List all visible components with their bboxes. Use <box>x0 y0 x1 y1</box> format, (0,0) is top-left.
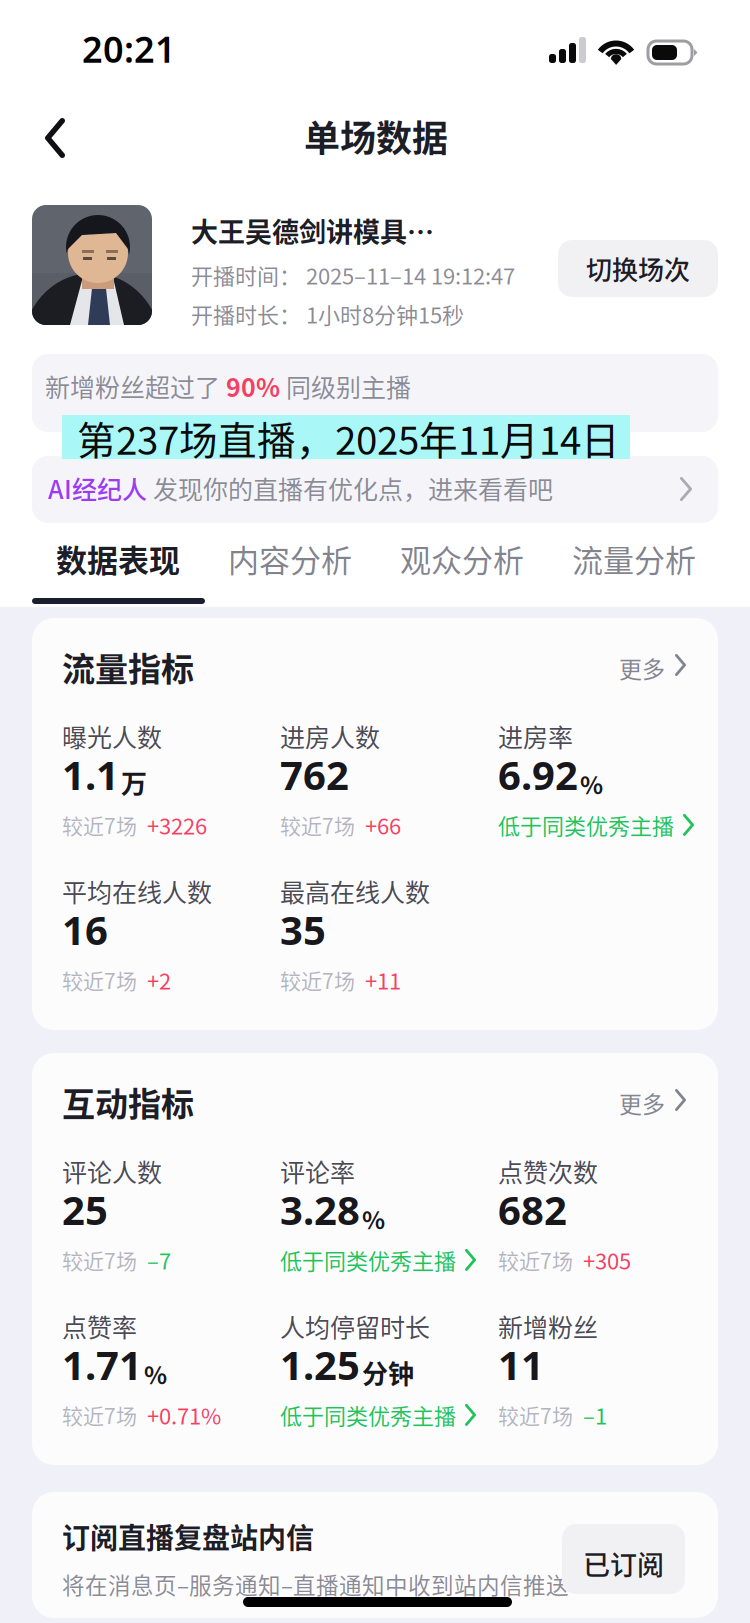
staticText: 内容分析 <box>228 536 352 581</box>
button[interactable]: 返回 <box>14 95 94 181</box>
staticText: 流量分析 <box>572 536 696 581</box>
staticText: 曝光人数 <box>62 718 162 754</box>
button[interactable]: 低于同类优秀主播 <box>498 809 694 841</box>
staticText: 20:21 <box>82 25 176 73</box>
button[interactable]: 切换场次 <box>558 240 718 297</box>
staticText: 发现你的直播有优化点，进来看看吧 <box>147 470 553 506</box>
staticText: 人均停留时长 <box>280 1308 430 1344</box>
staticText: 较近7场 <box>498 1245 573 1275</box>
button[interactable]: AI经纪人 <box>32 456 718 523</box>
staticText: 评论率 <box>280 1153 355 1189</box>
staticText: 较近7场 <box>498 1400 573 1430</box>
staticText: 低于同类优秀主播 <box>498 809 674 841</box>
button[interactable]: 更多 <box>619 1078 707 1120</box>
staticText: 切换场次 <box>586 250 690 287</box>
button[interactable]: 数据表现 <box>54 526 178 600</box>
staticText: 新增粉丝超过了 <box>45 368 226 404</box>
staticText: +11 <box>365 964 401 996</box>
staticText: 762 <box>280 748 349 801</box>
staticText: 进房率 <box>498 718 573 754</box>
staticText: 新增粉丝 <box>498 1308 598 1344</box>
staticText: % <box>362 1201 385 1236</box>
staticText: +0.71% <box>147 1399 221 1431</box>
staticText: 分钟 <box>362 1353 414 1391</box>
staticText: 35 <box>280 903 326 956</box>
staticText: 较近7场 <box>62 810 137 840</box>
staticText: 订阅直播复盘站内信 <box>62 1516 314 1556</box>
staticText: 数据表现 <box>56 536 180 581</box>
staticText: 1.71 <box>62 1338 142 1391</box>
staticText: +66 <box>365 809 401 841</box>
staticText: 1.25 <box>280 1338 360 1391</box>
staticText: 流量指标 <box>62 643 194 691</box>
staticText: 11 <box>498 1338 544 1391</box>
staticText: 点赞率 <box>62 1308 137 1344</box>
staticText: –7 <box>147 1244 171 1276</box>
button[interactable]: 低于同类优秀主播 <box>280 1399 476 1431</box>
staticText: 点赞次数 <box>498 1153 598 1189</box>
button[interactable]: 观众分析 <box>398 526 522 600</box>
staticText: 平均在线人数 <box>62 873 212 909</box>
staticText: 90% <box>226 368 280 404</box>
staticText: 开播时长： 1小时8分钟15秒 <box>191 298 464 330</box>
staticText: 观众分析 <box>400 536 524 581</box>
staticText: % <box>144 1356 167 1391</box>
staticText: % <box>580 766 603 801</box>
staticText: 682 <box>498 1183 567 1236</box>
staticText: 进房人数 <box>280 718 380 754</box>
staticText: 单场数据 <box>304 110 448 162</box>
button[interactable]: 内容分析 <box>226 526 350 600</box>
staticText: 6.92 <box>498 748 578 801</box>
staticText: +3226 <box>147 809 207 841</box>
staticText: 同级别主播 <box>280 368 411 404</box>
staticText: 低于同类优秀主播 <box>280 1244 456 1276</box>
staticText: 较近7场 <box>280 810 355 840</box>
staticText: 3.28 <box>280 1183 360 1236</box>
staticText: 最高在线人数 <box>280 873 430 909</box>
staticText: 互动指标 <box>62 1078 194 1126</box>
staticText: 25 <box>62 1183 108 1236</box>
button[interactable]: 更多 <box>619 643 707 685</box>
button[interactable]: 流量分析 <box>570 526 694 600</box>
staticText: 更多 <box>619 1086 665 1119</box>
staticText: 较近7场 <box>62 1400 137 1430</box>
staticText: 评论人数 <box>62 1153 162 1189</box>
button[interactable]: 已订阅 <box>562 1524 685 1594</box>
staticText: 开播时间： 2025–11–14 19:12:47 <box>191 259 515 291</box>
staticText: 低于同类优秀主播 <box>280 1399 456 1431</box>
staticText: 较近7场 <box>62 1245 137 1275</box>
staticText: 大王吴德剑讲模具… <box>191 211 434 250</box>
staticText: 万 <box>121 763 147 801</box>
staticText: 较近7场 <box>280 965 355 995</box>
staticText: 16 <box>62 903 108 956</box>
staticText: 将在消息页–服务通知–直播通知中收到站内信推送 <box>62 1568 569 1601</box>
staticText: 更多 <box>619 651 665 684</box>
staticText: 1.1 <box>62 748 119 801</box>
staticText: +305 <box>583 1244 631 1276</box>
staticText: +2 <box>147 964 171 996</box>
staticText: AI经纪人 <box>48 470 147 506</box>
staticText: 已订阅 <box>583 1544 664 1583</box>
staticText: 第237场直播，2025年11月14日 <box>77 410 620 466</box>
staticText: 较近7场 <box>62 965 137 995</box>
staticText: –1 <box>583 1399 607 1431</box>
button[interactable]: 低于同类优秀主播 <box>280 1244 476 1276</box>
